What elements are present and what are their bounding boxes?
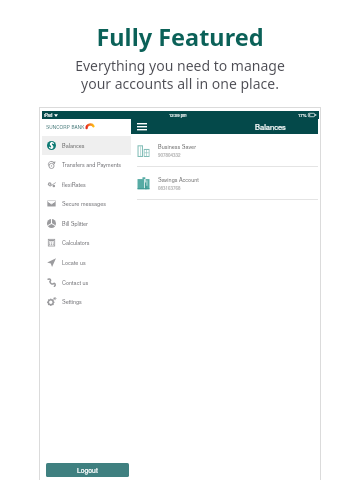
- staticText: SUNCORP BANK: [46, 124, 85, 131]
- button[interactable]: Transfers and Payments: [42, 155, 131, 174]
- button[interactable]: Secure messages: [42, 194, 131, 213]
- staticText: 12:09 pm: [169, 112, 187, 118]
- staticText: 083163768: [158, 185, 181, 191]
- staticText: Fully Featured: [0, 21, 360, 53]
- staticText: flexiRates: [62, 181, 86, 189]
- staticText: Balances: [255, 121, 286, 132]
- staticText: Calculators: [62, 239, 90, 247]
- staticText: 907804332: [158, 152, 181, 158]
- button[interactable]: flexiRates: [42, 175, 131, 194]
- button[interactable]: Savings Account: [131, 167, 318, 200]
- button[interactable]: Contact us: [42, 273, 131, 292]
- button[interactable]: Calculators: [42, 233, 131, 252]
- staticText: Everything you need to manage your accou…: [0, 56, 360, 93]
- button[interactable]: Balances: [42, 136, 131, 155]
- button[interactable]: Locate us: [42, 253, 131, 272]
- staticText: Transfers and Payments: [62, 161, 122, 169]
- staticText: Contact us: [62, 279, 89, 287]
- staticText: Secure messages: [62, 200, 106, 208]
- staticText: Logout: [77, 465, 98, 475]
- staticText: Bill Splitter: [62, 220, 88, 228]
- button[interactable]: Bill Splitter: [42, 214, 131, 233]
- staticText: Business Saver: [158, 143, 196, 151]
- button[interactable]: Business Saver: [131, 134, 318, 167]
- staticText: iPad: [44, 112, 53, 118]
- button[interactable]: Settings: [42, 292, 131, 311]
- staticText: Locate us: [62, 259, 86, 267]
- button[interactable]: Open navigation menu: [135, 119, 149, 134]
- staticText: Savings Account: [158, 176, 199, 184]
- staticText: Settings: [62, 298, 82, 306]
- staticText: Balances: [62, 142, 85, 150]
- button[interactable]: Logout: [46, 463, 129, 477]
- staticText: 17%: [298, 112, 307, 118]
